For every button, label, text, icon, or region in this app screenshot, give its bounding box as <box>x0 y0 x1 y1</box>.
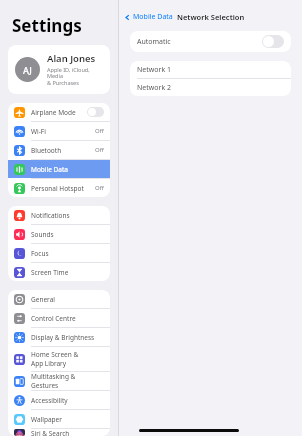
staticText: Airplane Mode <box>31 108 87 117</box>
button[interactable]: Network 1 <box>130 61 291 78</box>
staticText: Wallpaper <box>31 415 104 424</box>
button[interactable]: Focus <box>8 244 110 262</box>
staticText: Focus <box>31 249 104 258</box>
staticText: Bluetooth <box>31 146 95 155</box>
button[interactable]: Sounds <box>8 225 110 243</box>
staticText: Mobile Data <box>31 165 104 174</box>
staticText: Network Selection <box>177 12 245 22</box>
staticText: Alan Jones <box>47 52 96 65</box>
button[interactable]: Network 2 <box>130 79 291 96</box>
staticText: Personal Hotspot <box>31 184 95 193</box>
button[interactable]: Home Screen & App Library <box>8 347 110 371</box>
button[interactable]: General <box>8 290 110 308</box>
button[interactable]: Display & Brightness <box>8 328 110 346</box>
button[interactable]: Accessibility <box>8 391 110 409</box>
button[interactable]: Bluetooth <box>8 141 110 159</box>
button[interactable]: Notifications <box>8 206 110 224</box>
staticText: Automatic <box>137 37 171 47</box>
staticText: Screen Time <box>31 268 104 277</box>
staticText: Control Centre <box>31 314 104 323</box>
button[interactable]: Control Centre <box>8 309 110 327</box>
staticText: Notifications <box>31 211 104 220</box>
staticText: Home Screen & App Library <box>31 350 104 368</box>
staticText: Display & Brightness <box>31 333 104 342</box>
staticText: Network 1 <box>137 65 171 75</box>
staticText: Multitasking & Gestures <box>31 372 104 390</box>
staticText: Sounds <box>31 230 104 239</box>
staticText: Mobile Data <box>133 12 173 22</box>
staticText: Off <box>95 146 104 154</box>
staticText: Accessibility <box>31 396 104 405</box>
staticText: Settings <box>12 14 82 37</box>
staticText: Off <box>95 184 104 192</box>
staticText: Apple ID, iCloud, Media & Purchases <box>47 66 103 87</box>
button[interactable]: Mobile Data <box>124 12 173 22</box>
button[interactable]: Personal Hotspot <box>8 179 110 197</box>
button[interactable]: Screen Time <box>8 263 110 281</box>
staticText: Network 2 <box>137 83 171 93</box>
staticText: General <box>31 295 104 304</box>
button[interactable]: Wi-Fi <box>8 122 110 140</box>
button[interactable]: Wallpaper <box>8 410 110 428</box>
button[interactable]: Toggle <box>87 107 104 117</box>
button[interactable]: Mobile Data <box>8 160 110 178</box>
button[interactable]: Multitasking & Gestures <box>8 372 110 390</box>
button[interactable]: AJ <box>8 45 110 94</box>
staticText: Siri & Search <box>31 429 104 436</box>
button[interactable]: Toggle <box>262 35 284 48</box>
staticText: AJ <box>23 64 32 76</box>
button[interactable]: Siri & Search <box>8 429 110 436</box>
button[interactable]: Airplane Mode <box>8 103 110 121</box>
staticText: Off <box>95 127 104 135</box>
staticText: Wi-Fi <box>31 127 95 136</box>
button[interactable]: Automatic <box>130 31 291 52</box>
